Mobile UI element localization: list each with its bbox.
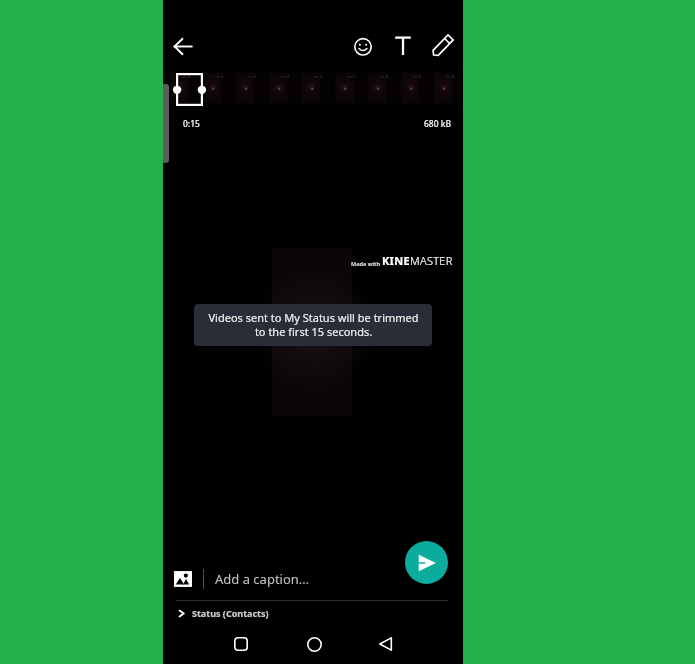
button[interactable]: Status (Contacts) xyxy=(163,602,463,624)
button[interactable]: Back xyxy=(169,32,197,60)
button[interactable]: Add text xyxy=(389,33,417,61)
button[interactable]: Trim selection xyxy=(176,73,203,106)
staticText: Status (Contacts) xyxy=(192,607,269,619)
button[interactable]: Emoji xyxy=(349,33,377,61)
staticText: KINE xyxy=(382,253,410,268)
button[interactable]: Send xyxy=(405,541,448,584)
button[interactable]: Home xyxy=(300,630,328,658)
button[interactable]: Recents xyxy=(227,630,255,658)
button[interactable]: Draw xyxy=(429,33,457,61)
button[interactable]: Add media xyxy=(173,569,193,589)
staticText: Videos sent to My Status will be trimmed… xyxy=(208,310,419,340)
button[interactable]: Back xyxy=(372,630,400,658)
staticText: MASTER xyxy=(410,253,453,268)
staticText: Made with xyxy=(351,260,382,267)
staticText: 680 kB xyxy=(424,118,452,130)
button[interactable]: Add a caption… xyxy=(215,570,310,588)
staticText: 0:15 xyxy=(183,118,200,130)
